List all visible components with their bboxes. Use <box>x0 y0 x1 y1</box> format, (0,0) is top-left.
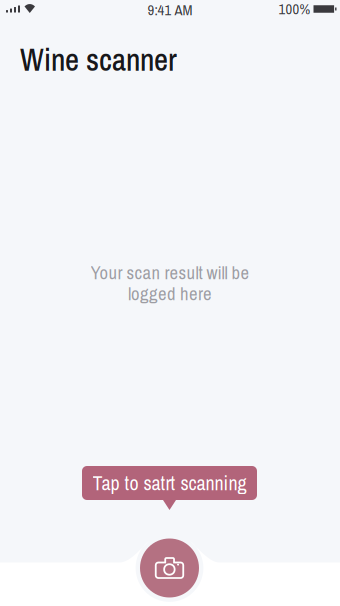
button[interactable]: Scan wine label <box>140 538 199 597</box>
staticText: Your scan result will be <box>90 260 249 285</box>
staticText: Wine scanner <box>20 39 177 80</box>
staticText: 100% <box>278 0 310 19</box>
staticText: 9:41 AM <box>147 0 192 20</box>
button[interactable]: Tap to satrt scanning <box>82 466 257 510</box>
staticText: Tap to satrt scanning <box>92 469 246 496</box>
staticText: logged here <box>128 281 212 306</box>
